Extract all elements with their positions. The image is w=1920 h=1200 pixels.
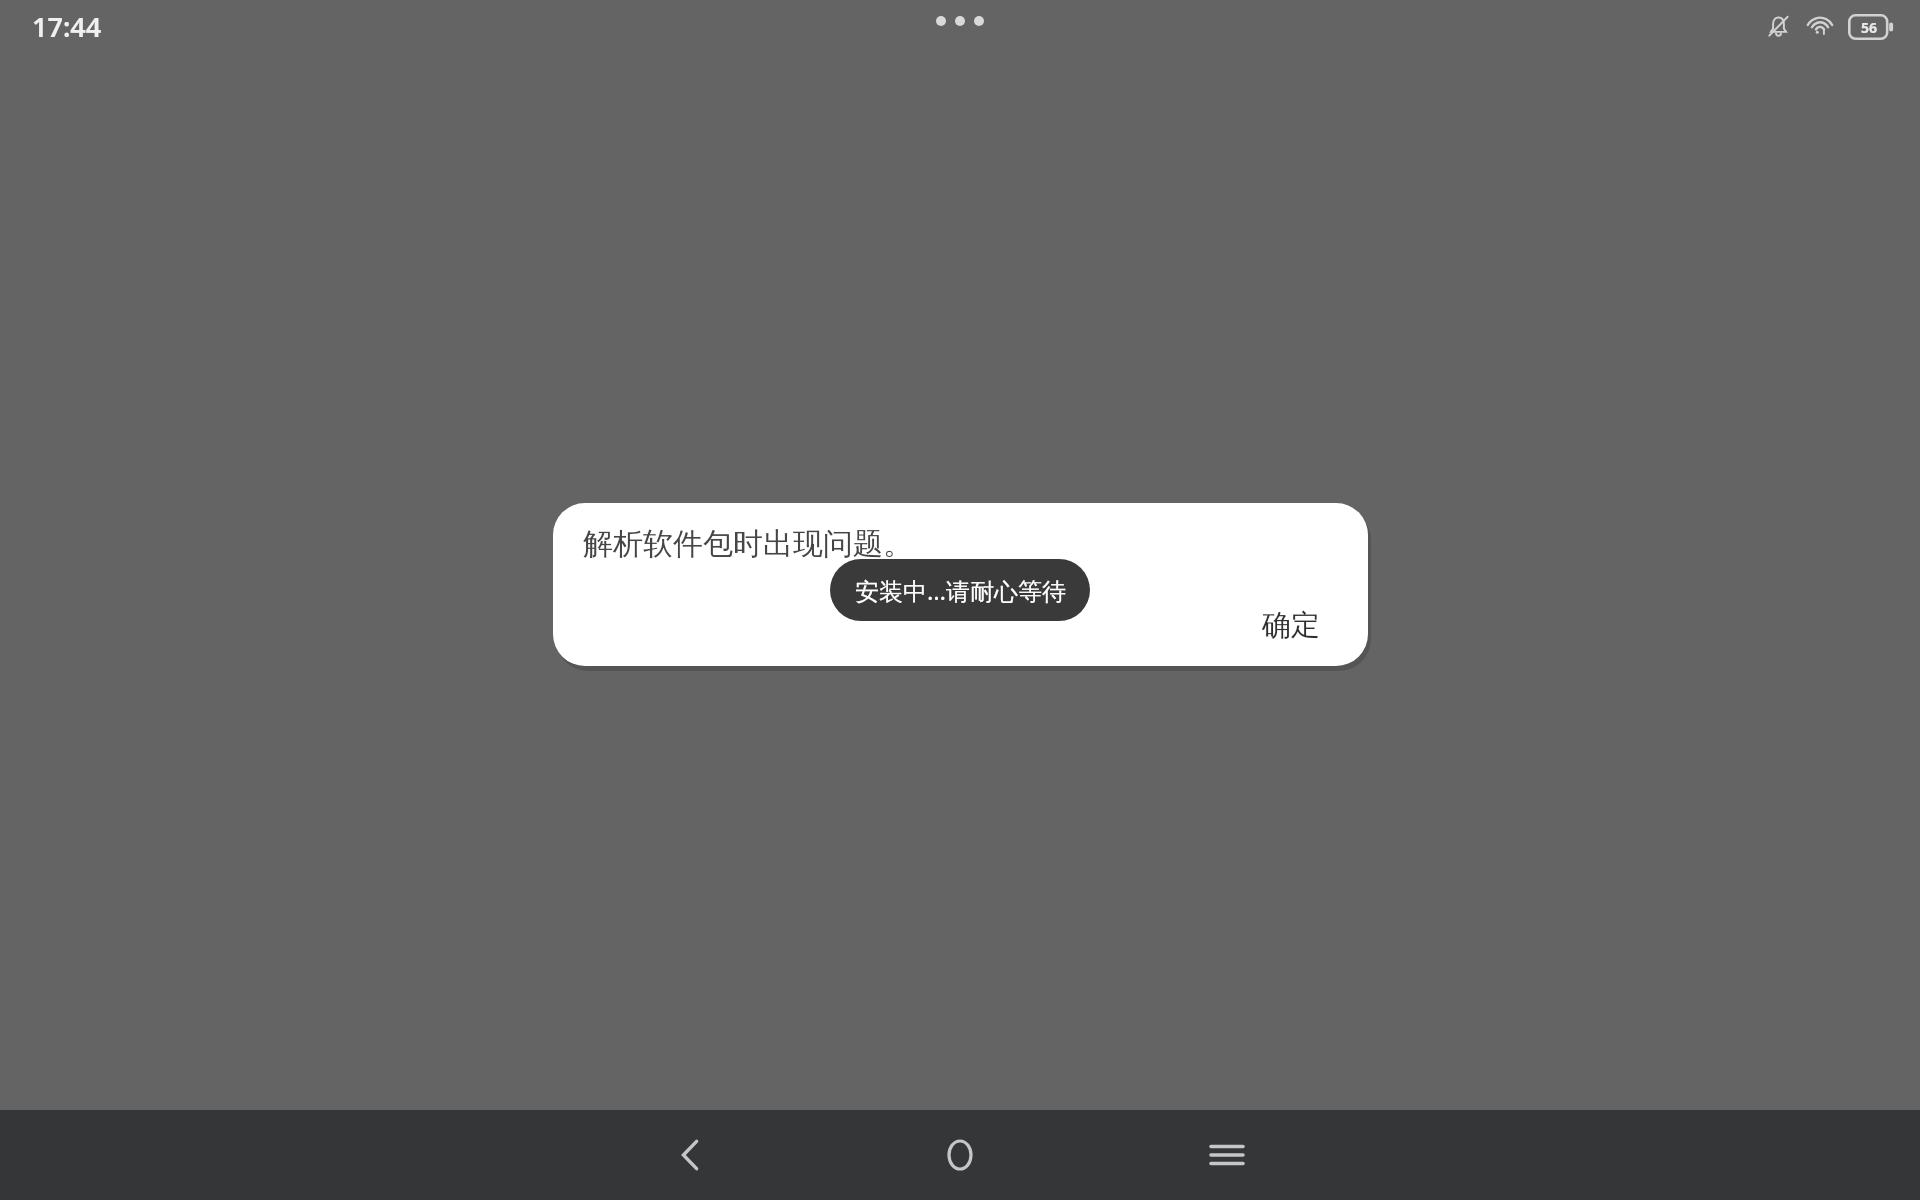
staticText: 确定 <box>1262 607 1320 644</box>
staticText: 56 <box>1861 18 1878 37</box>
staticText: 17:44 <box>32 8 102 45</box>
button[interactable]: Back <box>645 1110 735 1200</box>
button[interactable]: Menu <box>1182 1110 1272 1200</box>
staticText: 安装中…请耐心等待 <box>855 574 1066 607</box>
button[interactable]: Home <box>915 1110 1005 1200</box>
button[interactable]: 确定 <box>1250 601 1332 650</box>
staticText: 解析软件包时出现问题。 <box>583 525 913 563</box>
